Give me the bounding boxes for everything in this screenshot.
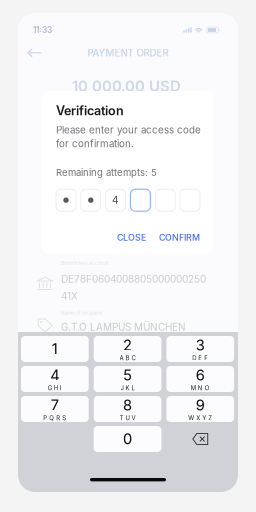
button[interactable]: Back xyxy=(25,45,44,61)
staticText: 11:33 xyxy=(33,25,52,35)
staticText: Please enter your access code xyxy=(56,124,201,136)
staticText: DE78F0604008805000000250 xyxy=(61,273,206,285)
button[interactable]: 3 xyxy=(166,336,234,362)
staticText: 3 xyxy=(196,336,205,354)
button[interactable]: CONFIRM xyxy=(154,228,205,247)
button[interactable]: 0 xyxy=(94,426,161,452)
staticText: CONFIRM xyxy=(159,232,200,243)
staticText: 5 xyxy=(123,366,132,384)
button[interactable]: 1 xyxy=(21,336,89,362)
staticText: 10 000.00 USD xyxy=(72,77,181,95)
staticText: Name of recipient xyxy=(61,310,103,316)
staticText: J K L xyxy=(121,384,135,392)
button[interactable]: CLOSE xyxy=(112,228,151,247)
staticText: PAYMENT ORDER xyxy=(87,47,168,59)
staticText: A B C xyxy=(120,354,136,362)
staticText: G.T.O LAMPUS MÜNCHEN xyxy=(61,321,186,333)
staticText: CLOSE xyxy=(117,232,146,243)
button[interactable]: 8 xyxy=(94,396,161,422)
staticText: G H I xyxy=(48,384,62,392)
staticText: 0 xyxy=(123,430,132,448)
staticText: 2 xyxy=(123,336,132,354)
staticText: P Q R S xyxy=(43,414,66,422)
staticText: 41X xyxy=(61,290,78,302)
staticText: Verification xyxy=(56,103,124,118)
staticText: 9 xyxy=(196,396,205,414)
staticText: 6 xyxy=(196,366,205,384)
staticText: 4 xyxy=(112,194,119,206)
button[interactable]: 5 xyxy=(94,366,161,392)
staticText: Remaining attempts: 5 xyxy=(56,167,157,178)
staticText: Beneficiary account xyxy=(61,260,109,266)
staticText: M N O xyxy=(191,384,210,392)
button[interactable]: 4 xyxy=(21,366,89,392)
button[interactable]: 6 xyxy=(166,366,234,392)
button[interactable]: 9 xyxy=(166,396,234,422)
staticText: for confirmation. xyxy=(56,138,134,150)
button[interactable]: 2 xyxy=(94,336,161,362)
button[interactable]: 7 xyxy=(21,396,89,422)
staticText: 4 xyxy=(50,366,59,384)
button[interactable]: Delete xyxy=(166,426,234,452)
staticText: D E F xyxy=(192,354,208,362)
staticText: T U V xyxy=(120,414,136,422)
staticText: 8 xyxy=(123,396,132,414)
staticText: W X Y Z xyxy=(188,414,212,422)
staticText: 1 xyxy=(52,340,58,358)
staticText: 7 xyxy=(51,396,59,414)
